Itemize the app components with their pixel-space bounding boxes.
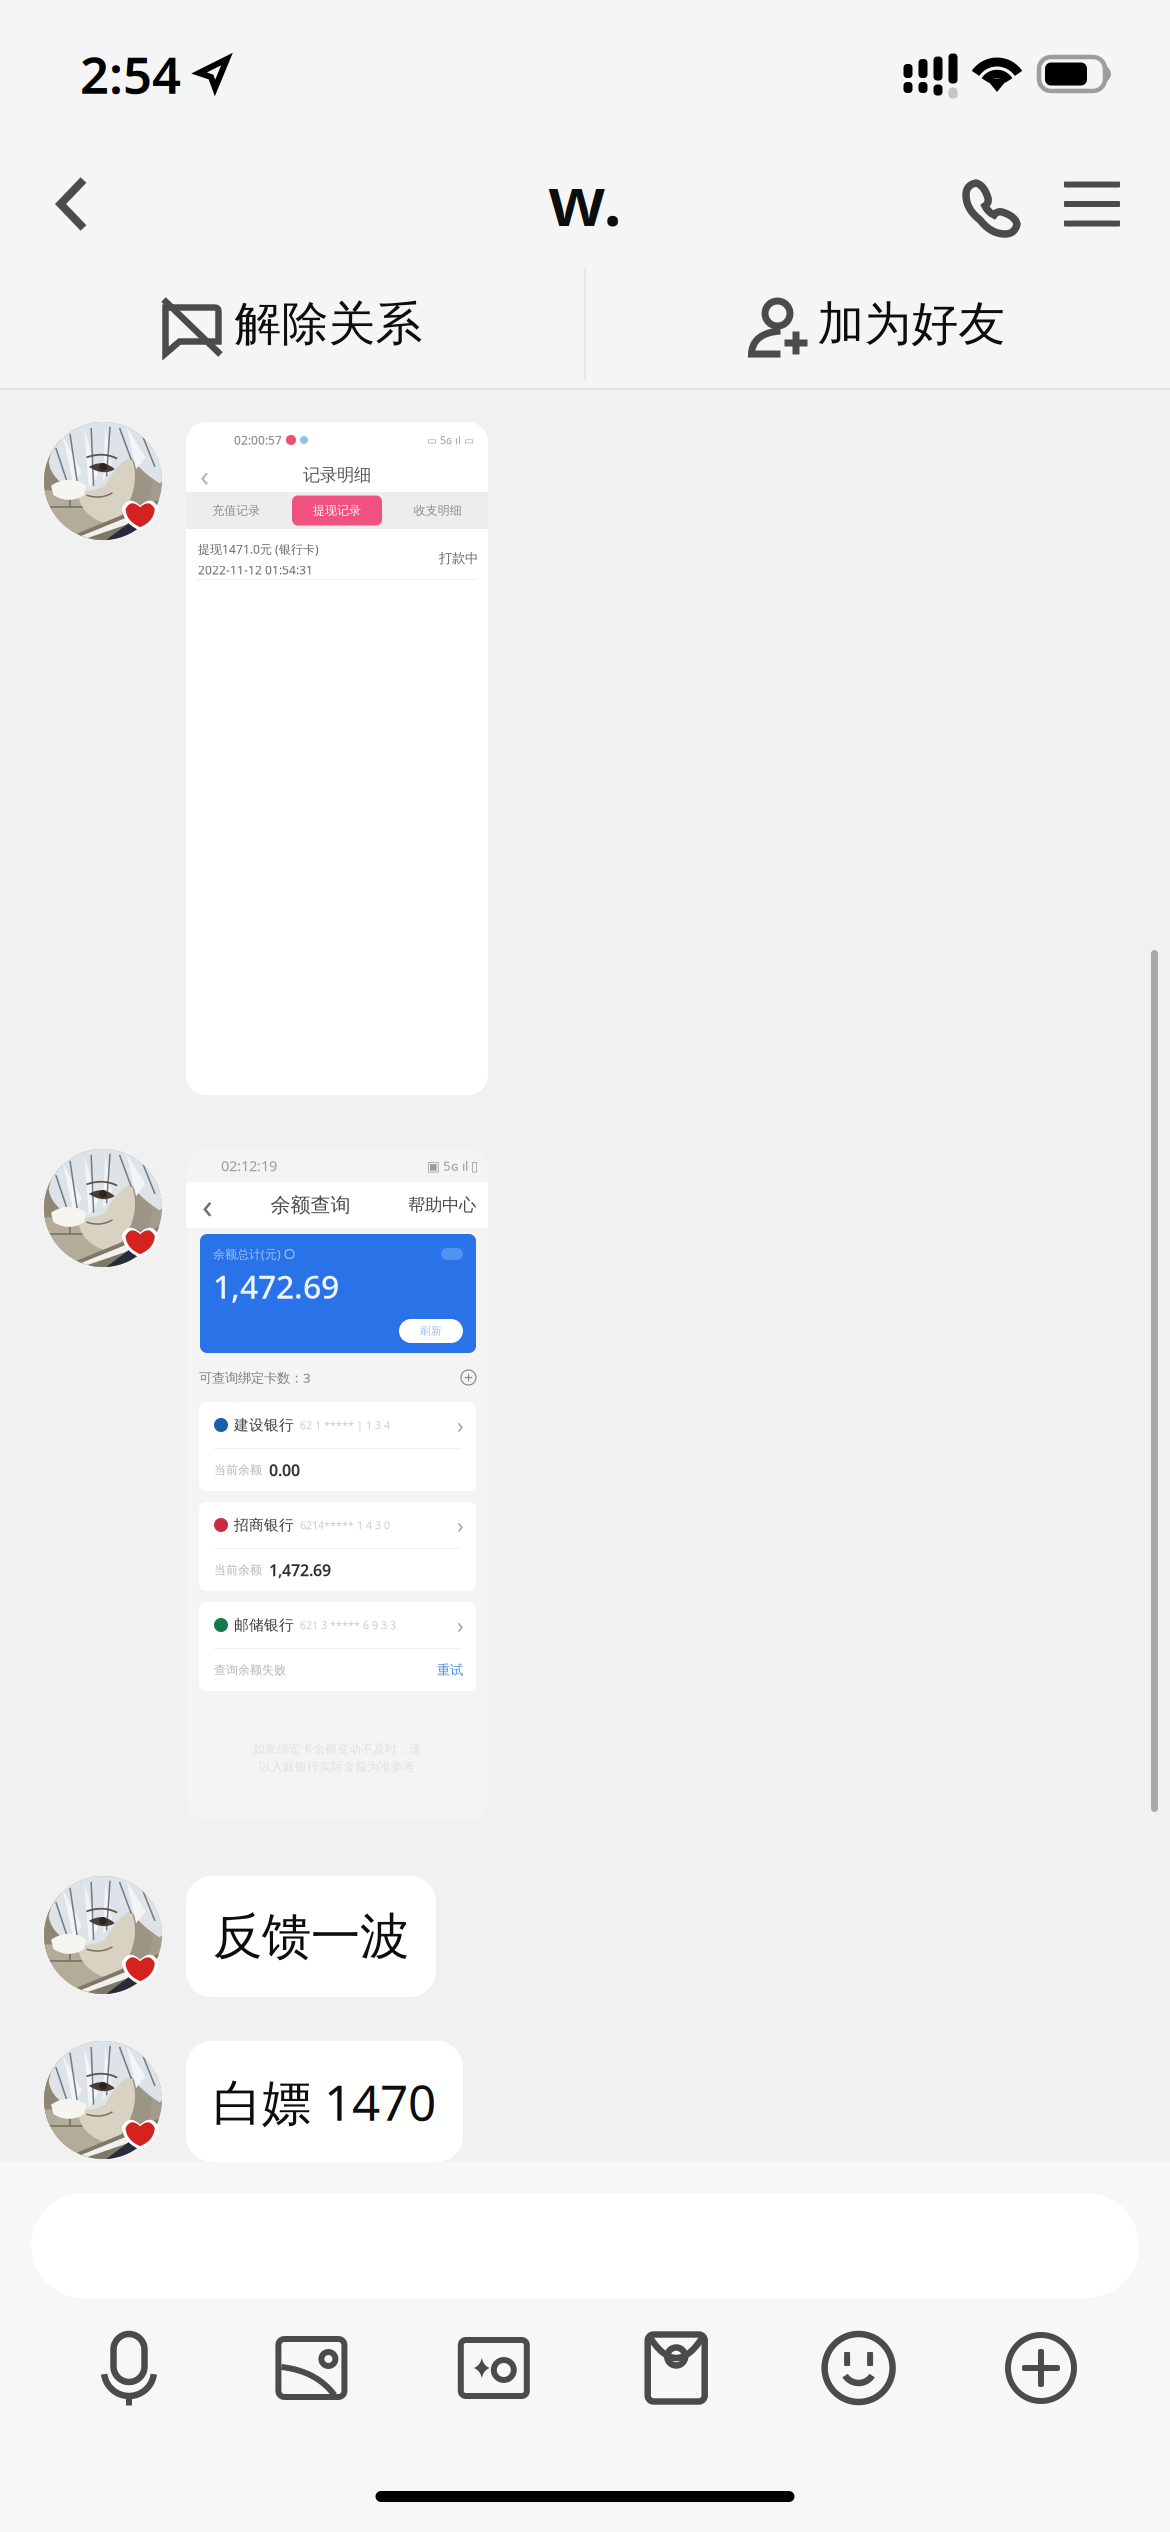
staticText: 2022-11-12 01:54:31	[198, 562, 313, 578]
staticText: 当前余额	[214, 1463, 262, 1477]
button[interactable]: Red packet	[634, 2328, 718, 2408]
staticText: 1,472.69	[213, 1265, 339, 1307]
button[interactable]: Voice message	[87, 2328, 171, 2408]
staticText: 如果绑定卡余额变动不及时，请	[253, 1741, 421, 1756]
staticText: 加为好友	[817, 295, 1005, 353]
button[interactable]: Stickers	[817, 2328, 901, 2408]
staticText: 打款中	[439, 550, 478, 566]
staticText: 当前余额	[214, 1563, 262, 1577]
staticText: 收支明细	[414, 503, 462, 518]
staticText: 邮储银行	[234, 1616, 294, 1634]
staticText: 621 3 ***** 6 9 3 3	[300, 1618, 396, 1632]
staticText: 2:54	[80, 40, 181, 108]
staticText: 以入账银行实际金额为准参考	[259, 1759, 415, 1774]
button[interactable]: Call	[938, 149, 1038, 259]
staticText: 查询余额失败	[214, 1663, 286, 1677]
button[interactable]: Camera	[452, 2328, 536, 2408]
staticText: ▣ 5ɢ ıl ▯	[427, 1157, 478, 1174]
staticText: 帮助中心	[408, 1194, 476, 1216]
staticText: 1,472.69	[269, 1559, 331, 1581]
staticText: ›	[457, 1611, 464, 1639]
staticText: 充值记录	[212, 503, 260, 518]
staticText: 反馈一波	[213, 1906, 409, 1967]
staticText: 提现1471.0元 (银行卡)	[198, 541, 319, 557]
staticText: 刷新	[420, 1324, 442, 1337]
button[interactable]: Menu	[1042, 149, 1142, 259]
staticText: 6214***** 1 4 3 0	[300, 1518, 390, 1532]
staticText: 余额总计(元)	[213, 1246, 281, 1262]
staticText: 62 1 ***** | 1 3 4	[300, 1418, 390, 1432]
staticText: 招商银行	[234, 1516, 294, 1534]
staticText: 白嫖 1470	[213, 2069, 436, 2134]
staticText: 0.00	[269, 1459, 300, 1481]
button[interactable]: 解除关系	[0, 260, 584, 388]
button[interactable]: More	[999, 2328, 1083, 2408]
staticText: 02:00:57	[234, 432, 282, 448]
staticText: 重试	[437, 1662, 463, 1678]
staticText: ›	[457, 1411, 464, 1439]
button[interactable]: Back	[27, 149, 117, 259]
staticText: 可查询绑定卡数：3	[199, 1369, 311, 1386]
staticText: w.	[548, 153, 622, 245]
button[interactable]: Photos	[269, 2328, 353, 2408]
staticText: 02:12:19	[221, 1156, 277, 1175]
button[interactable]: 白嫖 1470	[186, 2041, 463, 2162]
staticText: 记录明细	[303, 464, 371, 486]
staticText: ‹	[200, 455, 209, 494]
staticText: ›	[457, 1511, 464, 1539]
button[interactable]: 反馈一波	[186, 1876, 436, 1997]
staticText: ▭ 5ɢ ıl ▭	[427, 433, 474, 447]
staticText: ‹	[202, 1182, 213, 1228]
staticText: 建设银行	[234, 1416, 294, 1434]
staticText: 解除关系	[234, 295, 422, 353]
staticText: 余额查询	[270, 1193, 350, 1217]
button[interactable]: 加为好友	[586, 260, 1170, 388]
staticText: 提现记录	[313, 503, 361, 518]
